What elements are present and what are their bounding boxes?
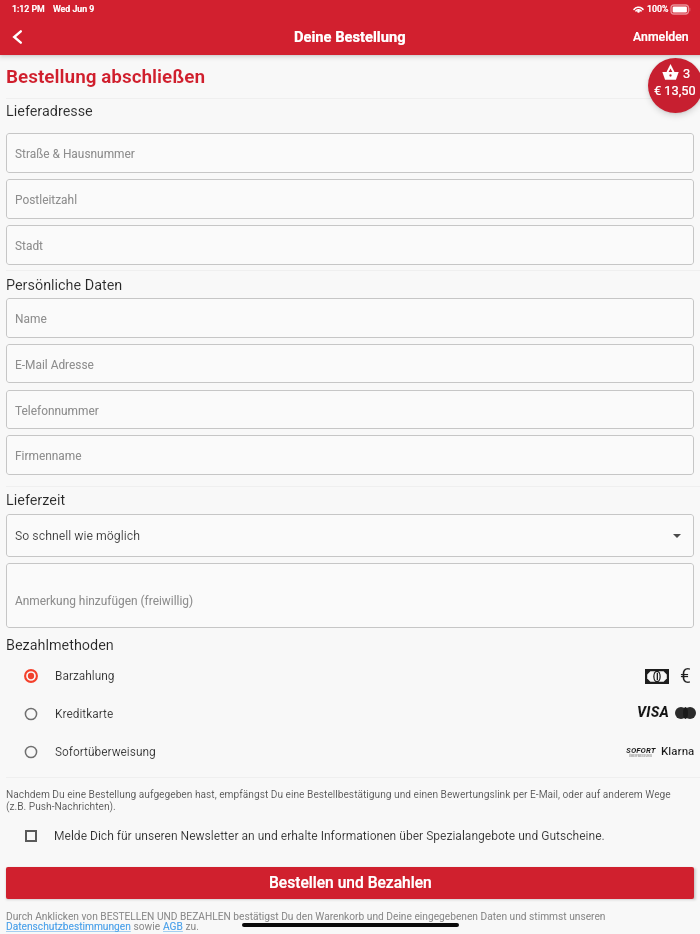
staticText: Bezahlmethoden [6, 637, 114, 654]
button[interactable]: Firmenname [6, 435, 694, 475]
button[interactable]: Kreditkarte [0, 695, 700, 733]
button[interactable]: So schnell wie möglich [6, 514, 694, 557]
staticText: Lieferzeit [6, 492, 66, 509]
staticText: Stadt [15, 239, 44, 253]
staticText: Kreditkarte [55, 707, 114, 721]
staticText: Straße & Hausnummer [15, 147, 135, 161]
staticText: AGB [163, 921, 183, 933]
staticText: Nachdem Du eine Bestellung aufgegeben ha… [6, 789, 678, 813]
button[interactable]: Straße & Hausnummer [6, 133, 694, 173]
staticText: Persönliche Daten [6, 277, 123, 294]
button[interactable]: Back [0, 18, 34, 55]
staticText: Melde Dich für unseren Newsletter an und… [54, 829, 605, 843]
button[interactable]: Stadt [6, 225, 694, 265]
staticText: Firmenname [15, 449, 82, 463]
button[interactable]: E-Mail Adresse [6, 344, 694, 383]
staticText: 3 [683, 66, 691, 81]
staticText: Bestellung abschließen [6, 65, 205, 87]
staticText: sowie [131, 921, 163, 933]
button[interactable]: Postleitzahl [6, 179, 694, 219]
staticText: Anmerkung hinzufügen (freiwillig) [15, 594, 194, 608]
button[interactable]: Melde Dich für unseren Newsletter an und… [0, 827, 700, 845]
staticText: Klarna [661, 744, 695, 758]
staticText: Sofortüberweisung [55, 745, 156, 759]
staticText: Bestellen und Bezahlen [269, 874, 432, 892]
staticText: € 13,50 [654, 83, 696, 98]
staticText: Wed Jun 9 [53, 4, 95, 14]
button[interactable]: Sofortüberweisung [0, 733, 700, 771]
staticText: Lieferadresse [6, 103, 93, 120]
button[interactable]: Barzahlung [0, 657, 700, 695]
staticText: Postleitzahl [15, 193, 78, 207]
staticText: E-Mail Adresse [15, 358, 94, 372]
button[interactable]: Anmelden [619, 22, 700, 52]
staticText: Anmelden [633, 30, 689, 44]
staticText: Barzahlung [55, 669, 115, 683]
staticText: ÜBERWEISUNG [629, 754, 653, 757]
staticText: So schnell wie möglich [15, 529, 140, 543]
staticText: Telefonnummer [15, 404, 99, 418]
staticText: Deine Bestellung [294, 28, 406, 45]
staticText: VISA [637, 704, 670, 721]
staticText: Name [15, 312, 47, 326]
staticText: 100% [647, 4, 669, 14]
staticText: Datenschutzbestimmungen [6, 921, 131, 933]
staticText: SOFORT [626, 746, 656, 755]
button[interactable]: Name [6, 298, 694, 338]
staticText: € [680, 665, 691, 688]
button[interactable]: Bestellen und Bezahlen [6, 867, 694, 899]
staticText: 1:12 PM [12, 4, 45, 14]
staticText: zu. [183, 921, 199, 933]
button[interactable]: Anmerkung hinzufügen (freiwillig) [6, 563, 694, 628]
button[interactable]: Warenkorb, 3 Artikel, 13,50 Euro [648, 58, 700, 113]
button[interactable]: Telefonnummer [6, 390, 694, 429]
staticText: Durch Anklicken von BESTELLEN UND BEZAHL… [6, 911, 606, 923]
